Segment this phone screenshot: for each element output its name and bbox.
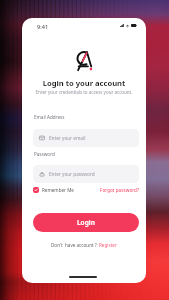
staticText: Enter your email [49, 135, 86, 141]
button[interactable]: Enter your password [33, 165, 139, 183]
staticText: Enter your password [49, 171, 95, 177]
button[interactable]: Remember Me [33, 187, 74, 193]
staticText: 9:41 [37, 23, 49, 31]
staticText: Enter your credentials to access your ac… [22, 89, 146, 95]
button[interactable]: Enter your email [33, 129, 139, 147]
button[interactable]: Login [33, 213, 139, 232]
button[interactable]: Register [99, 242, 117, 248]
staticText: Email Address [34, 114, 65, 120]
staticText: Password [34, 151, 55, 157]
staticText: Login to your account [22, 78, 146, 88]
button[interactable]: Forgot password? [100, 187, 139, 193]
staticText: Login [77, 218, 95, 227]
staticText: Remember Me [42, 187, 74, 193]
staticText: Don't have account ? [51, 242, 99, 248]
